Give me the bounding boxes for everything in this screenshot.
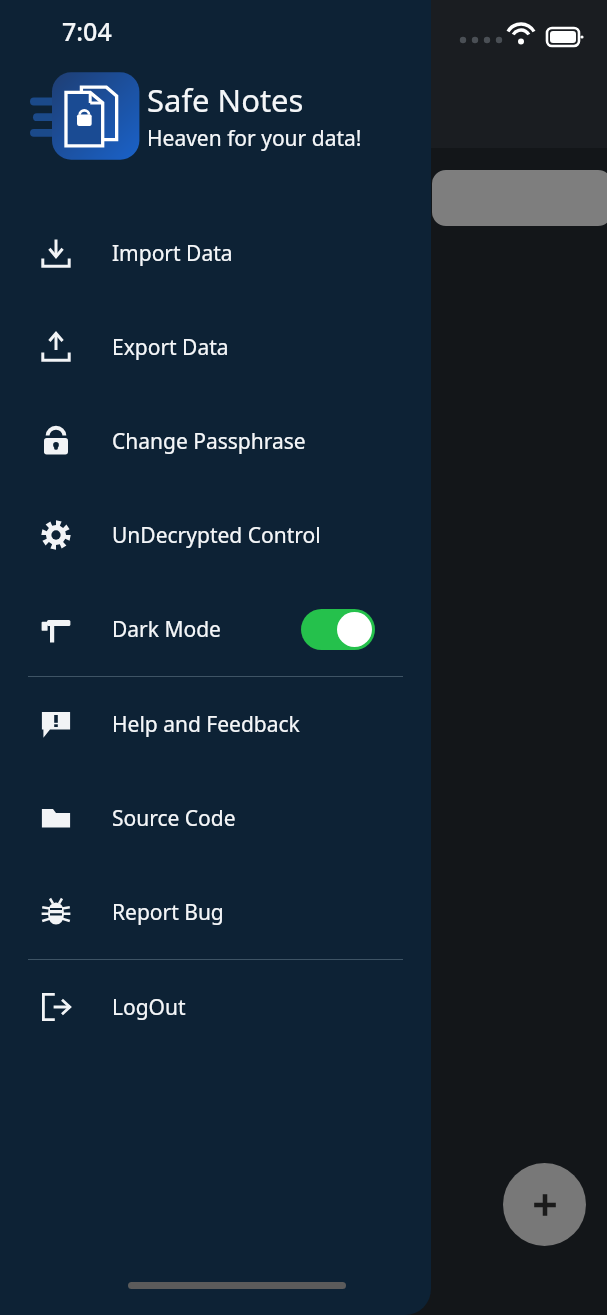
staticText: UnDecrypted Control [112,521,321,550]
staticText: Safe Notes [147,79,304,121]
button[interactable]: Dark Mode toggle [301,609,375,650]
button[interactable]: Import Data [0,206,431,300]
button[interactable]: Change Passphrase [0,394,431,488]
button[interactable]: Add note [503,1163,586,1246]
staticText: Change Passphrase [112,427,306,456]
staticText: Dark Mode [112,615,221,644]
staticText: Help and Feedback [112,710,300,739]
button[interactable]: Export Data [0,300,431,394]
staticText: Source Code [112,804,236,833]
button[interactable]: UnDecrypted Control [0,488,431,582]
button[interactable]: Help and Feedback [0,677,431,771]
button[interactable]: Report Bug [0,865,431,959]
button[interactable]: LogOut [0,960,431,1054]
staticText: Import Data [112,239,233,268]
staticText: 7:04 [62,14,112,48]
button[interactable]: Source Code [0,771,431,865]
staticText: Export Data [112,333,229,362]
staticText: LogOut [112,993,186,1022]
button[interactable]: Dark Mode [0,582,431,676]
staticText: Report Bug [112,898,224,927]
staticText: Heaven for your data! [147,124,362,153]
button[interactable] [432,170,607,226]
